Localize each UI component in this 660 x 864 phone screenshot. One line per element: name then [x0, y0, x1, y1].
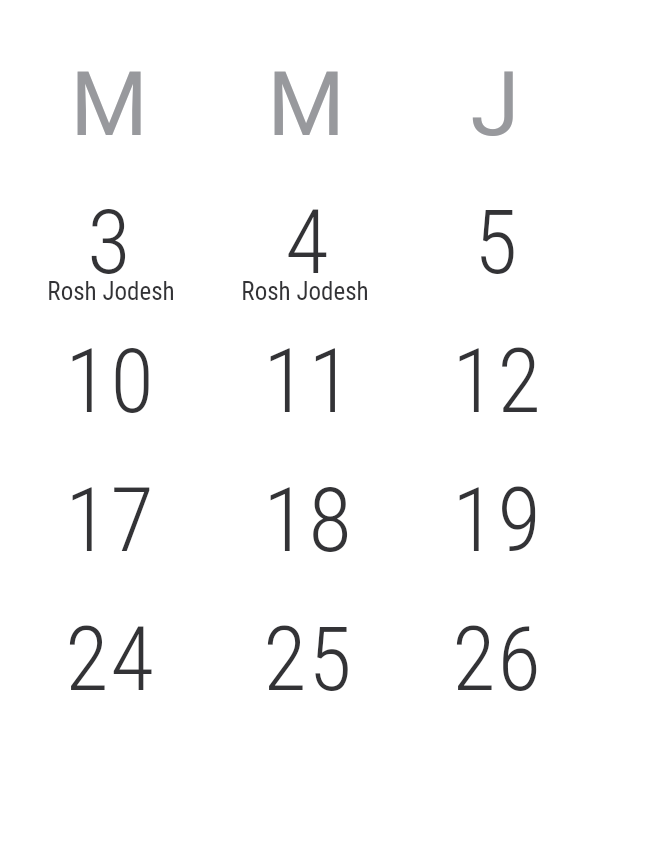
- staticText: Rosh Jodesh: [47, 277, 175, 306]
- staticText: 24: [65, 607, 156, 711]
- button[interactable]: 10: [15, 311, 205, 450]
- staticText: 19: [452, 468, 543, 572]
- staticText: 10: [65, 329, 156, 433]
- button[interactable]: 17: [15, 450, 205, 589]
- staticText: Rosh Jodesh: [241, 277, 369, 306]
- button[interactable]: 12: [402, 311, 592, 450]
- staticText: 18: [263, 468, 354, 572]
- staticText: 12: [452, 329, 543, 433]
- button[interactable]: 3: [15, 172, 205, 311]
- button[interactable]: 11: [213, 311, 403, 450]
- staticText: 26: [452, 607, 543, 711]
- button[interactable]: Weekday column J: [400, 52, 590, 142]
- button[interactable]: 19: [402, 450, 592, 589]
- button[interactable]: 5: [402, 172, 592, 311]
- button[interactable]: Weekday column M: [14, 52, 204, 142]
- button[interactable]: 25: [213, 589, 403, 728]
- button[interactable]: 4: [213, 172, 403, 311]
- staticText: M: [70, 52, 148, 142]
- staticText: M: [267, 52, 345, 142]
- staticText: 11: [263, 329, 354, 433]
- button[interactable]: 26: [402, 589, 592, 728]
- staticText: 5: [474, 190, 520, 294]
- staticText: 17: [65, 468, 156, 572]
- button[interactable]: Weekday column M: [211, 52, 401, 142]
- button[interactable]: 18: [213, 450, 403, 589]
- staticText: 4: [285, 190, 331, 294]
- staticText: 25: [263, 607, 354, 711]
- button[interactable]: 24: [15, 589, 205, 728]
- staticText: 3: [87, 190, 133, 294]
- staticText: J: [470, 52, 520, 142]
